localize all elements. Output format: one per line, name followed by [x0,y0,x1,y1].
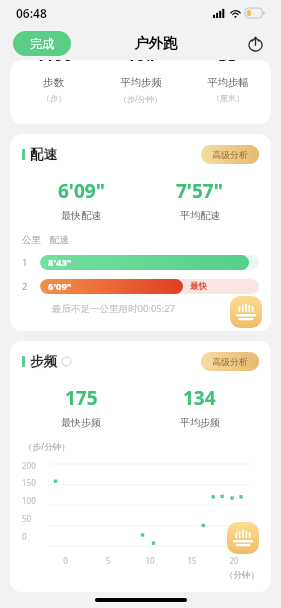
button[interactable]: 完成 [13,31,71,56]
staticText: 134 [183,385,216,411]
staticText: 平均步频 [120,76,162,89]
staticText: 50 [22,513,32,524]
button[interactable]: 高级分析 [201,352,259,371]
staticText: 最快配速 [61,209,101,222]
staticText: 最快 [190,281,207,292]
staticText: （分钟） [225,570,259,581]
staticText: 配速 [30,146,57,163]
staticText: 平均步幅 [207,76,249,89]
staticText: 175 [65,385,98,411]
staticText: （步/分钟） [24,441,70,453]
staticText: 1 [22,256,28,269]
staticText: 7'57" [176,178,223,204]
staticText: 10 [129,555,171,566]
staticText: 完成 [30,36,54,51]
staticText: 步数 [43,76,64,89]
staticText: 0 [44,555,87,566]
staticText: 户外跑 [134,34,178,52]
staticText: 200 [22,460,36,471]
staticText: 100 [22,495,36,506]
staticText: 20 [213,555,255,566]
staticText: 0 [22,531,27,542]
staticText: 平均配速 [180,209,220,222]
staticText: 8'43" [48,256,72,269]
staticText: 平均步频 [180,416,220,429]
button[interactable]: 高级分析 [201,145,259,164]
staticText: （厘米） [212,93,244,103]
staticText: 最快步频 [61,416,101,429]
staticText: 06:48 [16,5,47,21]
staticText: 6'09" [58,178,105,204]
staticText: 134 [126,60,156,61]
staticText: 步频 [30,353,57,370]
staticText: （步/分钟） [119,93,162,104]
staticText: 公里 [22,234,41,246]
staticText: 最后不足一公里用时00:05:27 [52,302,176,315]
staticText: 6'09" [48,280,72,293]
staticText: 5 [87,555,129,566]
staticText: 配速 [50,234,69,246]
staticText: （步） [42,93,66,103]
staticText: 55 [218,60,238,61]
staticText: 高级分析 [212,149,248,160]
button[interactable]: Share [242,30,268,56]
staticText: 2733 [34,60,73,61]
button[interactable]: 2733 [10,60,271,124]
staticText: 150 [22,477,36,488]
staticText: 15 [171,555,213,566]
staticText: 2 [22,280,28,293]
staticText: 高级分析 [212,356,248,367]
